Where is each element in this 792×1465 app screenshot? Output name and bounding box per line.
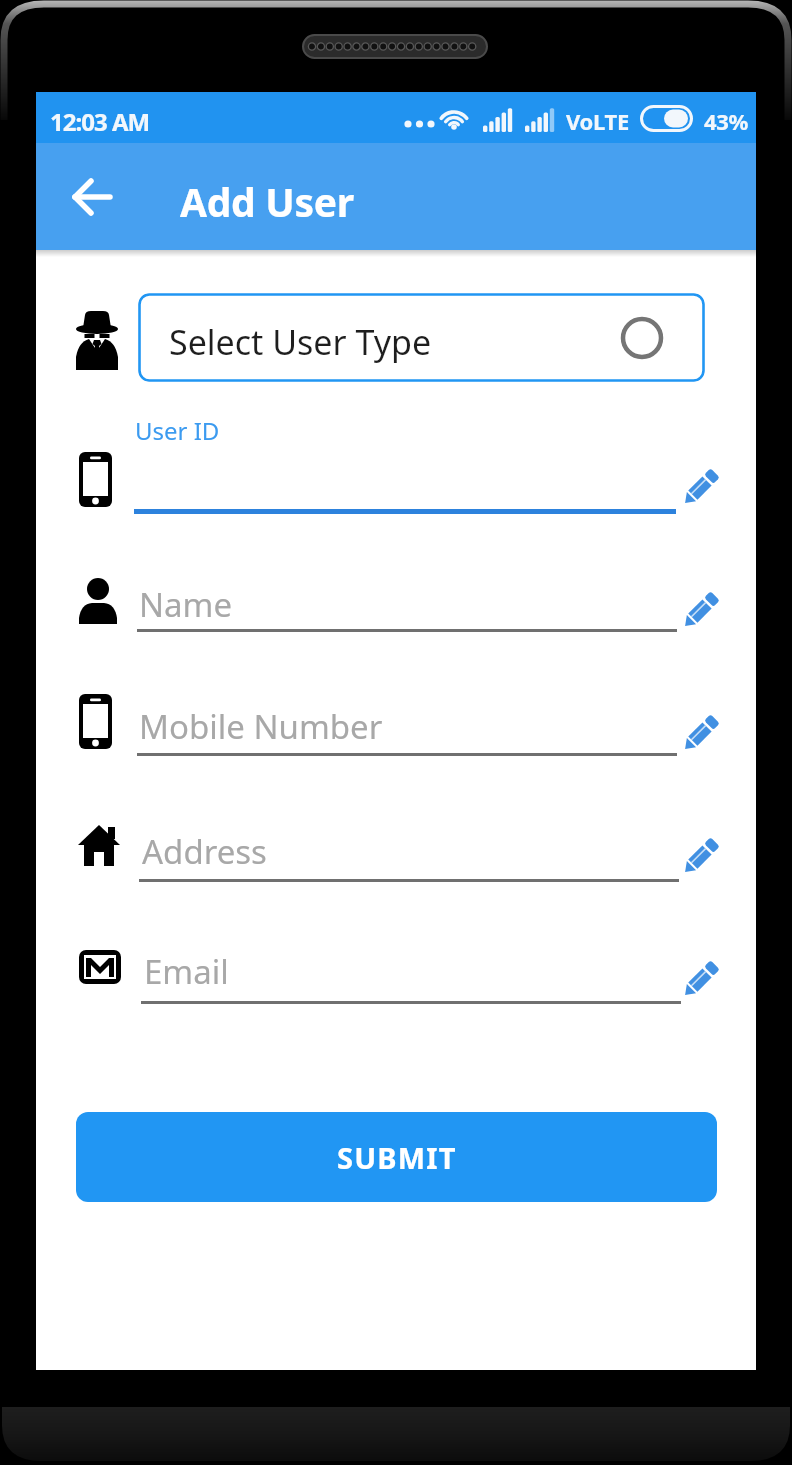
button[interactable]: SUBMIT: [76, 1112, 717, 1202]
button[interactable]: [76, 818, 721, 884]
button[interactable]: [684, 962, 718, 996]
staticText: SUBMIT: [337, 1138, 457, 1177]
staticText: Add User: [180, 175, 354, 228]
button[interactable]: [76, 942, 721, 1008]
staticText: VoLTE: [566, 106, 629, 136]
button[interactable]: [76, 572, 721, 634]
staticText: 12:03 AM: [50, 105, 150, 138]
button[interactable]: Select User Type: [138, 293, 705, 382]
button[interactable]: [684, 716, 718, 750]
button[interactable]: [684, 593, 718, 627]
button[interactable]: [684, 470, 718, 504]
staticText: Select User Type: [169, 319, 432, 365]
staticText: Email: [144, 949, 229, 994]
staticText: Mobile Number: [139, 704, 383, 749]
button[interactable]: [68, 172, 116, 220]
button[interactable]: [76, 692, 721, 758]
staticText: User ID: [135, 414, 220, 447]
button[interactable]: [684, 839, 718, 873]
staticText: Address: [142, 829, 267, 874]
button[interactable]: [76, 412, 721, 517]
staticText: Name: [139, 582, 233, 627]
staticText: 43%: [704, 106, 749, 136]
